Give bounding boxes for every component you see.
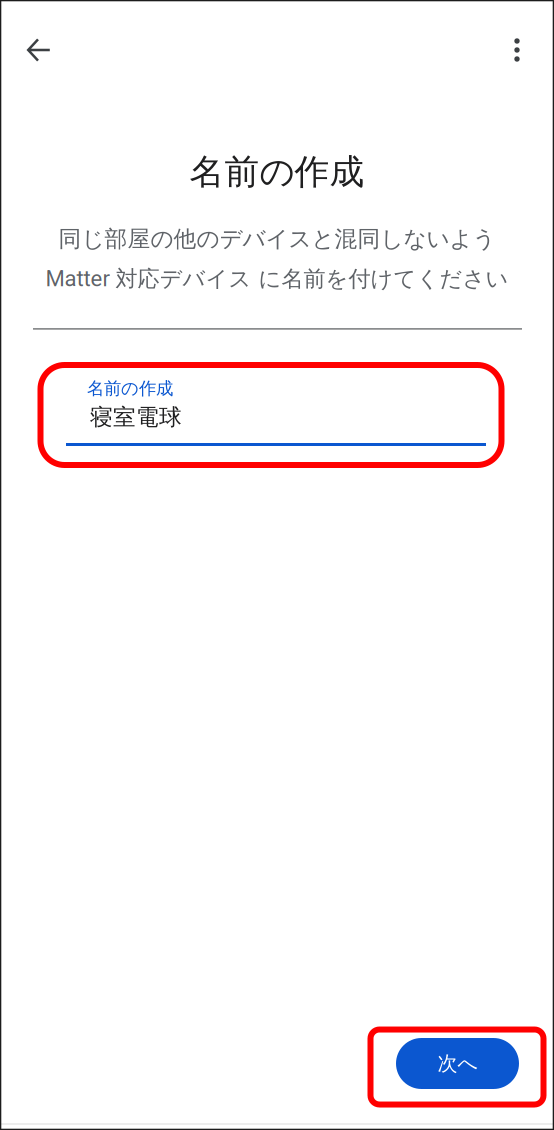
staticText: 次へ [437,1051,477,1076]
button[interactable]: 次へ [396,1038,519,1089]
staticText: 名前の作成 [189,150,364,194]
staticText: Matter 対応デバイス に名前を付けてください [45,265,508,293]
staticText: 寝室電球 [90,403,182,432]
button[interactable]: More options [495,27,539,73]
staticText: 同じ部屋の他のデバイスと混同しないよう [58,225,495,253]
button[interactable]: Back [16,27,62,73]
button[interactable]: 名前の作成 [66,361,486,446]
staticText: 名前の作成 [87,377,173,399]
